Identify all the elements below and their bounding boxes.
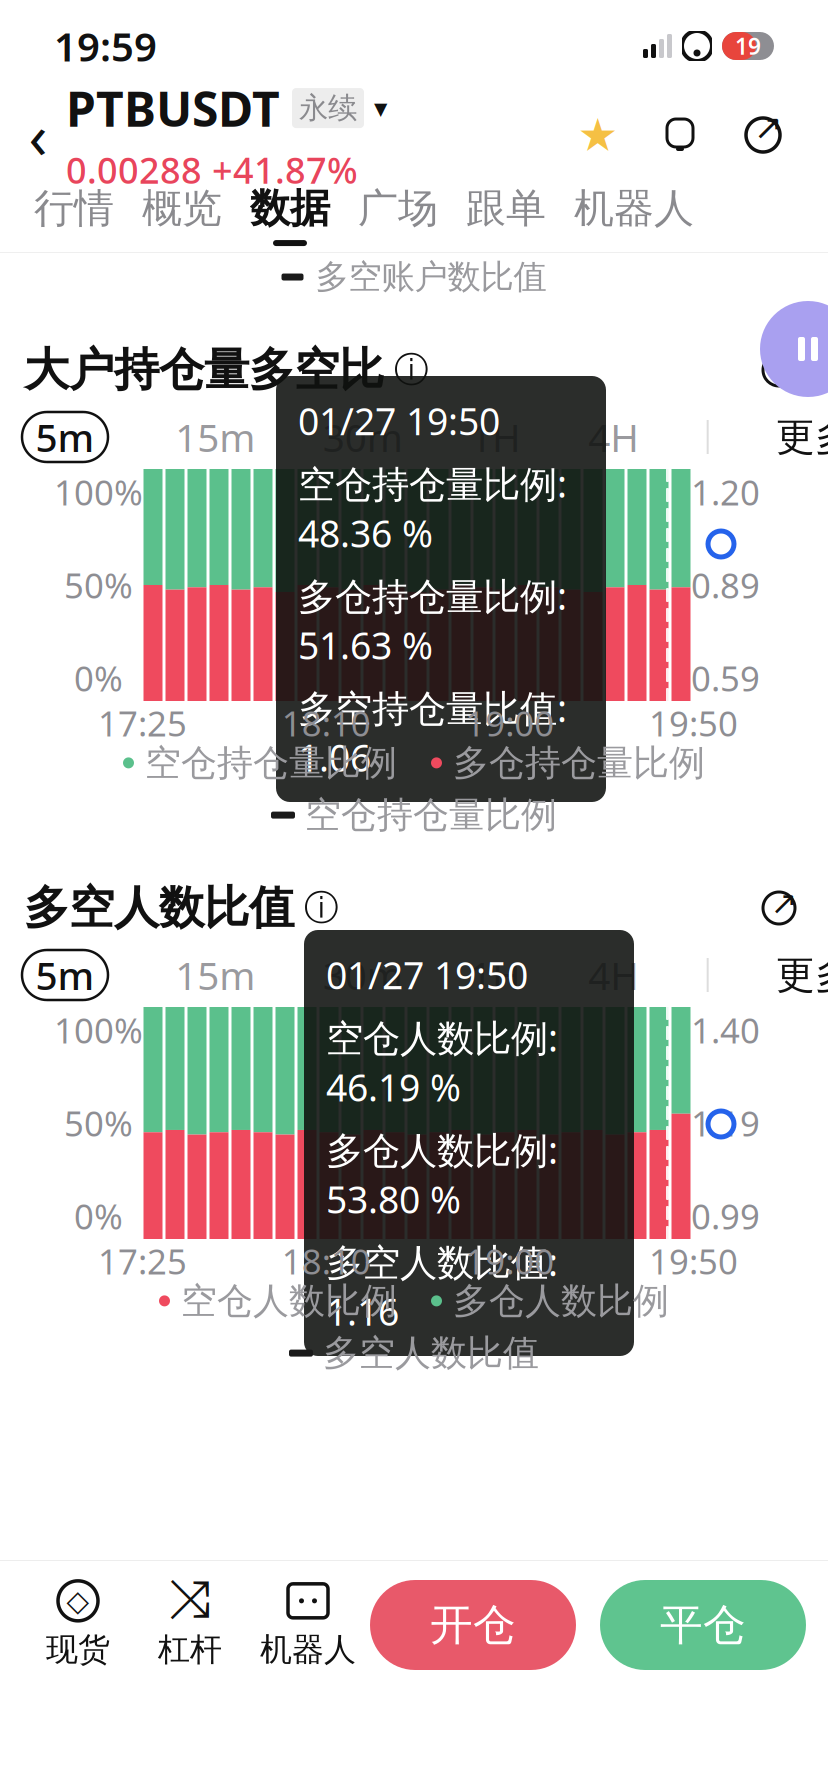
button[interactable]: ⤨	[134, 1570, 246, 1680]
button[interactable]: 概览	[128, 178, 236, 252]
staticText: 0.59	[691, 655, 760, 701]
staticText: 多空持仓量比值: 1.06	[298, 683, 567, 782]
button[interactable]: 提醒	[658, 110, 702, 160]
staticText: 更多	[776, 951, 828, 999]
staticText: 空仓持仓量比例: 48.36 %	[298, 459, 567, 558]
staticText: 100%	[54, 469, 143, 515]
staticText: +41.87%	[212, 146, 358, 194]
staticText: 50%	[64, 1100, 133, 1146]
button[interactable]: ◇	[22, 1570, 134, 1680]
staticText: 0%	[74, 655, 123, 701]
staticText: 杠杆	[158, 1630, 222, 1669]
button[interactable]: 30m	[323, 950, 403, 1000]
staticText: 18:10	[282, 1238, 371, 1284]
button[interactable]: 全屏	[754, 345, 804, 395]
staticText: 30m	[323, 949, 403, 1001]
staticText: ↗	[754, 107, 783, 147]
staticText: 4H	[588, 949, 639, 1001]
staticText: ▾	[374, 93, 387, 123]
button[interactable]: 跟单	[452, 178, 560, 252]
button[interactable]: 行情	[20, 178, 128, 252]
staticText: 30m	[323, 411, 403, 463]
button[interactable]: 收藏	[576, 110, 620, 160]
button[interactable]: 全屏	[754, 883, 804, 933]
staticText: ◇	[66, 1584, 89, 1617]
staticText: 空仓人数比例	[170, 1279, 397, 1323]
staticText: 17:25	[98, 1238, 187, 1284]
staticText: 19:00	[465, 700, 554, 746]
button[interactable]: 更多	[776, 950, 828, 1000]
button[interactable]: 5m	[22, 950, 108, 1000]
staticText: 数据	[250, 184, 330, 233]
staticText: 大户持仓量多空比	[24, 342, 384, 398]
button[interactable]: 开仓	[370, 1580, 576, 1670]
staticText: ↗	[770, 885, 797, 921]
staticText: 多仓人数比例: 53.80 %	[326, 1125, 558, 1224]
button[interactable]: Back	[10, 100, 66, 170]
staticText: 永续	[299, 90, 357, 126]
staticText: 多仓人数比例	[442, 1279, 669, 1323]
staticText: 17:25	[98, 700, 187, 746]
staticText: 50%	[64, 562, 133, 608]
staticText: ⓘ	[294, 887, 339, 929]
button[interactable]: 数据	[236, 178, 344, 252]
staticText: 15m	[175, 411, 255, 463]
staticText: 广场	[358, 184, 438, 233]
staticText: 19:50	[649, 1238, 738, 1284]
staticText: 现货	[46, 1630, 110, 1669]
button[interactable]: 4H	[588, 412, 639, 462]
staticText: 19:00	[465, 1238, 554, 1284]
staticText: 4H	[588, 411, 639, 463]
button[interactable]: 悬浮窗	[760, 301, 828, 397]
staticText: 多空人数比值	[323, 1331, 539, 1375]
button[interactable]: 永续	[292, 88, 387, 128]
staticText: 01/27 19:50	[298, 396, 500, 446]
staticText: 1H	[470, 411, 521, 463]
staticText: 01/27 19:50	[326, 950, 528, 1000]
staticText: 19:59	[54, 19, 157, 72]
staticText: 平仓	[660, 1599, 746, 1651]
staticText: 多空人数比值	[24, 880, 294, 936]
button[interactable]: 15m	[175, 412, 255, 462]
staticText: 空仓人数比例: 46.19 %	[326, 1013, 558, 1112]
staticText: 机器人	[260, 1630, 356, 1669]
staticText: 行情	[34, 184, 114, 233]
staticText: ‹	[28, 94, 47, 176]
staticText: 1.40	[691, 1007, 760, 1053]
button[interactable]: 30m	[323, 412, 403, 462]
staticText: PTBUSDT	[66, 76, 280, 140]
staticText: 5m	[35, 411, 94, 463]
button[interactable]: 机器人	[246, 1570, 370, 1680]
button[interactable]: 4H	[588, 950, 639, 1000]
staticText: 1.20	[691, 469, 760, 515]
button[interactable]: 5m	[22, 412, 108, 462]
staticText: 0.99	[691, 1193, 760, 1239]
staticText: 概览	[142, 184, 222, 233]
button[interactable]: 1H	[470, 950, 521, 1000]
button[interactable]: 更多	[776, 412, 828, 462]
button[interactable]: 1H	[470, 412, 521, 462]
staticText: 1.19	[691, 1100, 760, 1146]
staticText: 开仓	[430, 1599, 516, 1651]
button[interactable]: 15m	[175, 950, 255, 1000]
staticText: ⓘ	[384, 349, 429, 391]
staticText: 多空人数比值: 1.16	[326, 1237, 558, 1336]
staticText: 更多	[776, 413, 828, 461]
staticText: 空仓持仓量比例	[305, 793, 557, 837]
staticText: 跟单	[466, 184, 546, 233]
button[interactable]: 分享	[740, 110, 786, 160]
staticText: 0.89	[691, 562, 760, 608]
staticText: 机器人	[574, 184, 694, 233]
button[interactable]: 机器人	[560, 178, 708, 252]
staticText: 1H	[470, 949, 521, 1001]
staticText: 多空账户数比值	[315, 256, 546, 297]
staticText: 0%	[74, 1193, 123, 1239]
button[interactable]: 平仓	[600, 1580, 806, 1670]
staticText: 15m	[175, 949, 255, 1001]
staticText: ↗	[770, 347, 797, 383]
staticText: 多仓持仓量比例: 51.63 %	[298, 571, 567, 670]
staticText: ★	[577, 109, 618, 161]
button[interactable]: 广场	[344, 178, 452, 252]
staticText: 19:50	[649, 700, 738, 746]
staticText: 5m	[35, 949, 94, 1001]
